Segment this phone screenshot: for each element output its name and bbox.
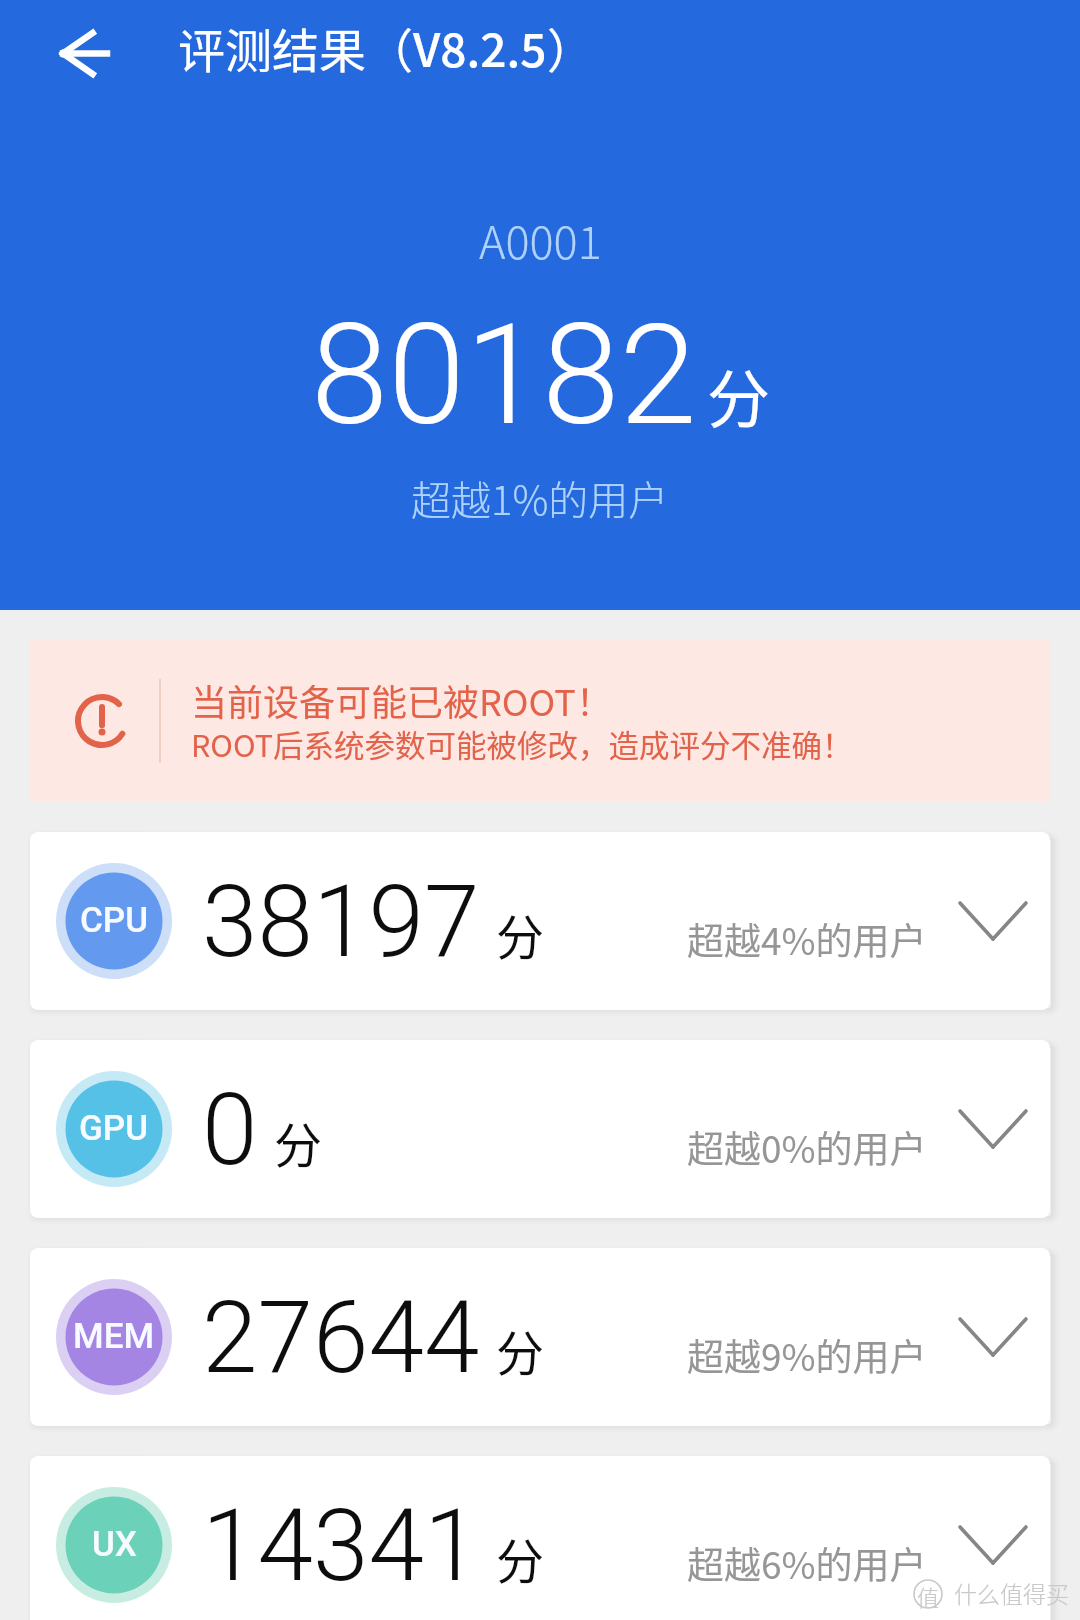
staticText: 38197 xyxy=(202,863,480,980)
staticText: 80182 xyxy=(311,294,697,457)
staticText: 超越9%的用户 xyxy=(687,1328,927,1382)
staticText: ） xyxy=(547,13,594,81)
button[interactable]: GPU xyxy=(30,1040,1050,1218)
staticText: CPU xyxy=(80,900,149,941)
staticText: 评测结果（ xyxy=(178,13,413,81)
staticText: 分 xyxy=(496,899,545,969)
staticText: 值 xyxy=(917,1580,940,1610)
staticText: ROOT后系统参数可能被修改，造成评分不准确！ xyxy=(191,722,853,766)
staticText: 分 xyxy=(496,1315,545,1385)
staticText: 分 xyxy=(274,1107,323,1177)
staticText: 什么值得买 xyxy=(954,1576,1069,1609)
staticText: 分 xyxy=(496,1523,545,1593)
button[interactable]: CPU xyxy=(30,832,1050,1010)
staticText: GPU xyxy=(79,1108,149,1149)
staticText: A0001 xyxy=(479,207,602,272)
staticText: 当前设备可能已被ROOT！ xyxy=(191,674,612,726)
staticText: MEM xyxy=(73,1316,155,1357)
staticText: V8.2.5 xyxy=(413,14,547,81)
staticText: 超越4%的用户 xyxy=(687,912,927,966)
staticText: 14341 xyxy=(202,1487,480,1604)
button[interactable]: 当前设备可能已被ROOT！ xyxy=(30,640,1050,802)
staticText: UX xyxy=(92,1524,137,1565)
staticText: 27644 xyxy=(202,1279,480,1396)
button[interactable]: UX xyxy=(30,1456,1050,1620)
button[interactable]: MEM xyxy=(30,1248,1050,1426)
staticText: 0 xyxy=(202,1071,258,1188)
button[interactable]: Back xyxy=(36,5,132,101)
staticText: 超越6%的用户 xyxy=(687,1536,927,1590)
staticText: 超越0%的用户 xyxy=(687,1120,927,1174)
staticText: 超越1%的用户 xyxy=(411,469,669,527)
staticText: 分 xyxy=(707,349,770,440)
